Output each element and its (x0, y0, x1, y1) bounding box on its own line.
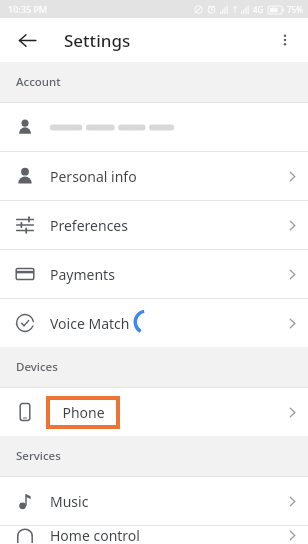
staticText: Voice Match (50, 314, 276, 333)
button[interactable]: Personal info (0, 152, 308, 200)
button[interactable]: Voice Match (0, 299, 308, 347)
button[interactable]: Payments (0, 250, 308, 298)
button[interactable]: Back (10, 23, 44, 57)
staticText: Devices (16, 359, 58, 375)
button[interactable]: More options (268, 23, 302, 57)
button[interactable]: Preferences (0, 201, 308, 249)
staticText: Music (50, 492, 276, 511)
button[interactable]: Home control (0, 526, 308, 544)
staticText: 10:35 PM (8, 3, 48, 15)
staticText: 75% (287, 4, 303, 15)
button[interactable]: Phone (0, 388, 308, 436)
staticText: 4G (253, 4, 264, 15)
staticText: Account (16, 74, 61, 90)
staticText: Personal info (50, 167, 276, 186)
button[interactable]: Music (0, 477, 308, 525)
staticText: Settings (64, 29, 131, 52)
button[interactable] (0, 103, 308, 151)
staticText: Payments (50, 265, 276, 284)
staticText: Home control (50, 526, 276, 544)
staticText: Phone (62, 403, 105, 422)
staticText: Preferences (50, 216, 276, 235)
staticText: Services (16, 448, 61, 464)
